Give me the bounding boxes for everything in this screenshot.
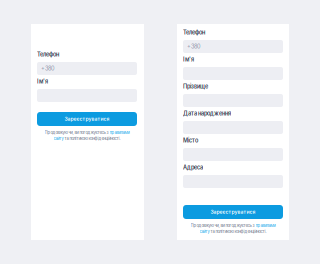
staticText: +380 [41,65,55,72]
staticText: та політикою конфіденційності. [209,229,266,234]
staticText: правилами [109,130,129,135]
staticText: Адреса [183,164,203,171]
staticText: правилами [255,223,275,228]
staticText: +380 [187,43,201,50]
staticText: Прізвище [183,83,208,90]
staticText: та політикою конфіденційності. [63,136,120,141]
staticText: Зареєструватися [210,209,255,215]
staticText: Продовжуючи, ви погоджуєтесь з [44,130,109,135]
button[interactable]: +380 [37,62,137,75]
staticText: Телефон [183,29,205,36]
button[interactable]: +380 [183,40,283,53]
staticText: сайту [199,229,209,234]
staticText: Ім'я [183,56,194,63]
staticText: Ім'я [37,78,48,85]
staticText: Місто [183,137,198,144]
staticText: Продовжуючи, ви погоджуєтесь з [190,223,255,228]
button[interactable]: Зареєструватися [183,205,283,219]
staticText: сайту [53,136,63,141]
staticText: Зареєструватися [64,116,109,122]
button[interactable]: Зареєструватися [37,112,137,126]
staticText: Дата народження [183,110,231,117]
staticText: Телефон [37,51,59,58]
